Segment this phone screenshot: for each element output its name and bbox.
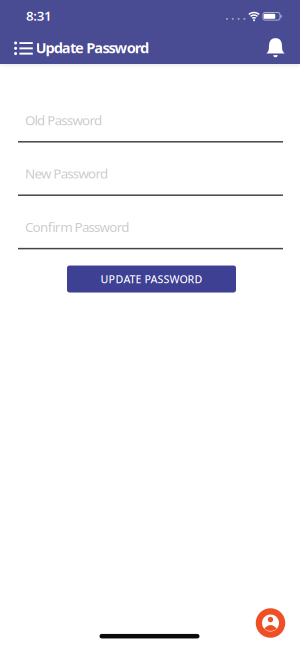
button[interactable]: Menu [8, 35, 38, 61]
staticText: Confirm Password [25, 218, 129, 236]
staticText: Update Password [35, 38, 149, 57]
button[interactable]: Profile [256, 608, 285, 637]
button[interactable]: Old Password [18, 109, 283, 142]
staticText: 8:31 [26, 7, 52, 24]
button[interactable]: UPDATE PASSWORD [67, 265, 236, 292]
button[interactable]: Notifications [258, 31, 292, 65]
button[interactable]: New Password [18, 162, 283, 196]
staticText: Old Password [25, 111, 102, 129]
button[interactable]: Confirm Password [18, 216, 283, 249]
staticText: UPDATE PASSWORD [100, 272, 202, 286]
staticText: New Password [25, 164, 108, 182]
